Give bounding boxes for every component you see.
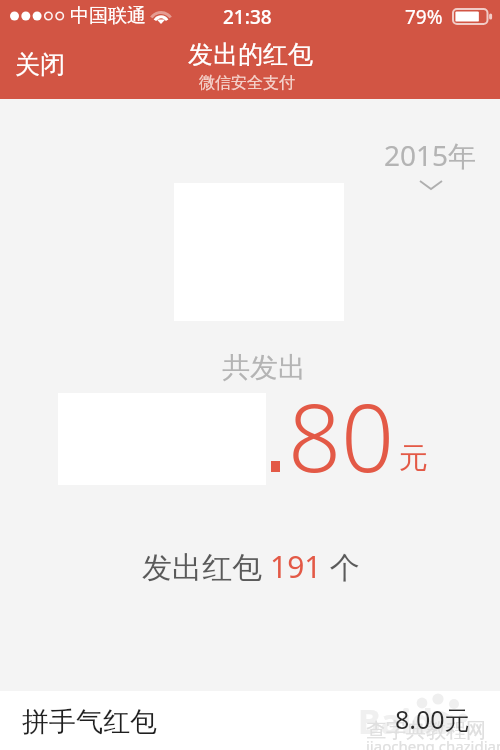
staticText: jiaocheng.chazidian.com bbox=[366, 736, 500, 750]
staticText: 191 bbox=[270, 546, 322, 587]
other: Wi-Fi bbox=[148, 8, 174, 25]
button[interactable]: 关闭 bbox=[3, 45, 77, 84]
staticText: 8.00元 bbox=[395, 702, 470, 736]
staticText: 21:38 bbox=[223, 4, 272, 30]
staticText: 拼手气红包 bbox=[22, 705, 157, 739]
staticText: 共发出 bbox=[222, 350, 306, 385]
staticText: 中国联通 bbox=[70, 4, 146, 28]
staticText: 个 bbox=[322, 546, 360, 587]
button[interactable]: 2015年 bbox=[384, 136, 477, 190]
button[interactable]: 拼手气红包 bbox=[0, 691, 500, 750]
staticText: 查字典教程网 bbox=[366, 718, 486, 743]
staticText: 元 bbox=[399, 440, 428, 477]
staticText: 79% bbox=[405, 4, 443, 30]
button[interactable]: 发出红包 bbox=[142, 546, 360, 587]
staticText: 2015年 bbox=[384, 136, 477, 174]
staticText: 发出红包 bbox=[142, 546, 270, 587]
staticText: Baidu bbox=[358, 698, 455, 744]
staticText: 微信安全支付 bbox=[199, 73, 295, 93]
staticText: 80 bbox=[288, 373, 395, 500]
staticText: 发出的红包 bbox=[188, 39, 313, 70]
staticText: 关闭 bbox=[15, 49, 65, 80]
